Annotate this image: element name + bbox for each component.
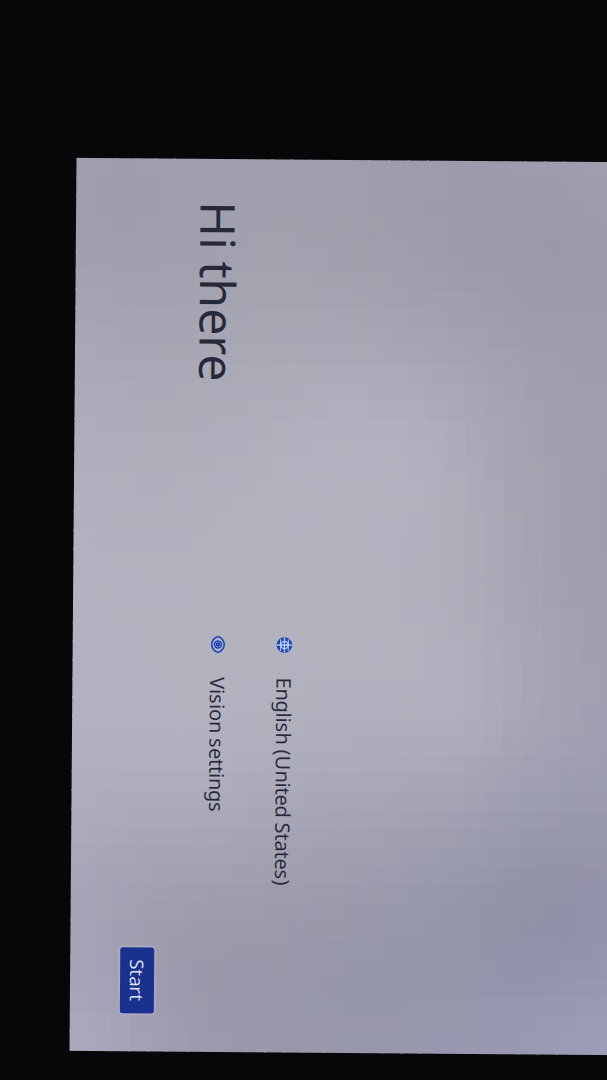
staticText: Hi there [0,705,122,769]
staticText: English (United States) [418,655,607,682]
staticText: Vision settings [418,721,553,748]
button[interactable]: English (United States) [377,648,607,688]
button[interactable]: Vision settings [377,715,607,755]
